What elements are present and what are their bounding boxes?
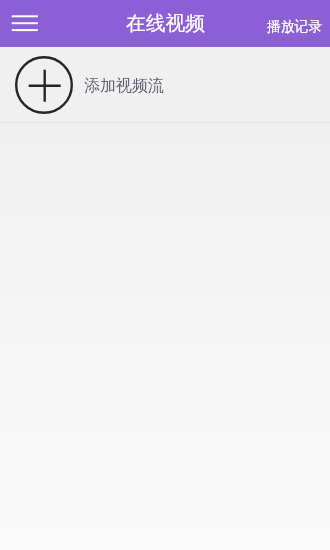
- staticText: 播放记录: [267, 18, 323, 35]
- staticText: 添加视频流: [84, 76, 164, 96]
- button[interactable]: 添加视频流: [0, 47, 330, 122]
- staticText: 在线视频: [126, 11, 206, 36]
- button[interactable]: 播放记录: [255, 0, 330, 47]
- button[interactable]: Menu: [0, 0, 50, 47]
